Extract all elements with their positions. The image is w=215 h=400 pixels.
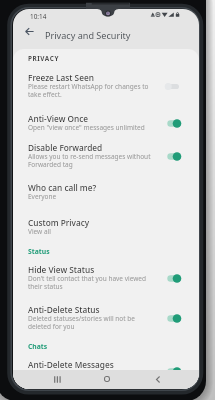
staticText: Don't tell contact that you have viewed … (28, 274, 155, 291)
button[interactable]: Freeze Last Seen (13, 72, 199, 101)
staticText: 10:14 (30, 12, 47, 21)
button[interactable]: Back (20, 22, 39, 41)
staticText: Deleted statuses/stories will not be del… (28, 314, 155, 331)
staticText: Chats (28, 342, 48, 351)
button[interactable]: Hide View Status (13, 264, 199, 293)
button[interactable]: Custom Privacy (13, 217, 199, 238)
button[interactable]: Home (99, 374, 115, 384)
staticText: Anti-Delete Messages (28, 359, 114, 370)
staticText: Who can call me? (28, 182, 97, 193)
staticText: Allows you to re-send messages without F… (28, 152, 155, 169)
staticText: Please restart WhatsApp for changes to t… (28, 82, 155, 99)
staticText: View all (28, 227, 155, 236)
button[interactable]: Disable Forwarded (13, 142, 199, 171)
staticText: Everyone (28, 192, 155, 201)
staticText: Freeze Last Seen (28, 72, 94, 83)
staticText: Open "view once" messages unlimited (28, 123, 155, 132)
staticText: Custom Privacy (28, 217, 90, 228)
staticText: Disable Forwarded (28, 142, 103, 153)
staticText: Anti-View Once (28, 113, 89, 124)
button[interactable]: Anti-Delete Status (13, 304, 199, 333)
button[interactable]: Back (150, 374, 166, 384)
staticText: Anti-Delete Status (28, 304, 100, 315)
button[interactable]: Anti-View Once (13, 113, 199, 134)
staticText: Status (28, 247, 50, 256)
button[interactable]: Who can call me? (13, 182, 199, 203)
staticText: Privacy and Security (45, 29, 131, 41)
staticText: PRIVACY (28, 54, 59, 63)
staticText: Hide View Status (28, 264, 95, 275)
button[interactable]: Anti-Delete Messages (13, 359, 199, 372)
button[interactable]: Recent apps (49, 374, 65, 384)
